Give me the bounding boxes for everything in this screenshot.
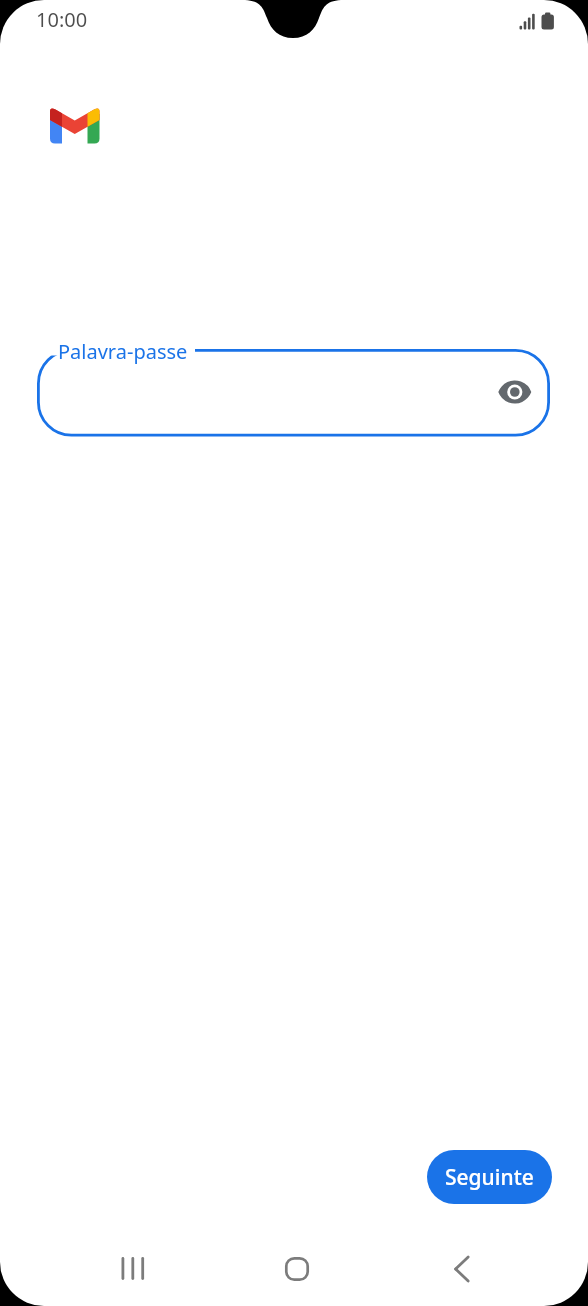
staticText: 10:00	[36, 6, 88, 33]
button[interactable]: Seguinte	[427, 1150, 552, 1204]
button[interactable]	[267, 1247, 327, 1291]
button[interactable]	[432, 1247, 492, 1291]
staticText: Seguinte	[445, 1163, 534, 1192]
button[interactable]	[37, 349, 550, 437]
button[interactable]	[103, 1247, 163, 1291]
staticText: Palavra-passe	[58, 338, 188, 365]
